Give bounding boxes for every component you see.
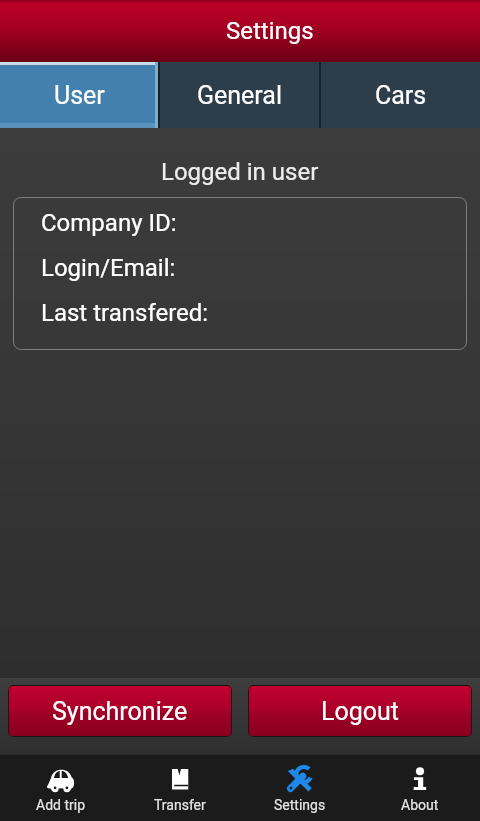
- button[interactable]: Transfer: [120, 755, 240, 821]
- staticText: Last transfered:: [41, 299, 209, 327]
- staticText: Logged in user: [161, 158, 319, 186]
- staticText: User: [54, 81, 105, 110]
- button[interactable]: Cars: [321, 62, 480, 128]
- button[interactable]: Settings: [240, 755, 360, 821]
- staticText: Add trip: [36, 797, 85, 813]
- button[interactable]: About: [360, 755, 480, 821]
- button[interactable]: Synchronize: [8, 685, 232, 737]
- staticText: General: [197, 81, 283, 110]
- staticText: Company ID:: [41, 209, 177, 237]
- staticText: Settings: [274, 797, 326, 813]
- button[interactable]: Logout: [248, 685, 472, 737]
- staticText: Logout: [321, 697, 399, 726]
- staticText: Settings: [226, 17, 314, 45]
- staticText: Login/Email:: [41, 254, 176, 282]
- staticText: About: [401, 797, 439, 813]
- button[interactable]: General: [160, 62, 319, 128]
- staticText: Cars: [375, 81, 427, 110]
- button[interactable]: User: [0, 62, 158, 128]
- button[interactable]: Add trip: [0, 755, 120, 821]
- staticText: Transfer: [154, 797, 206, 813]
- staticText: Synchronize: [52, 697, 188, 726]
